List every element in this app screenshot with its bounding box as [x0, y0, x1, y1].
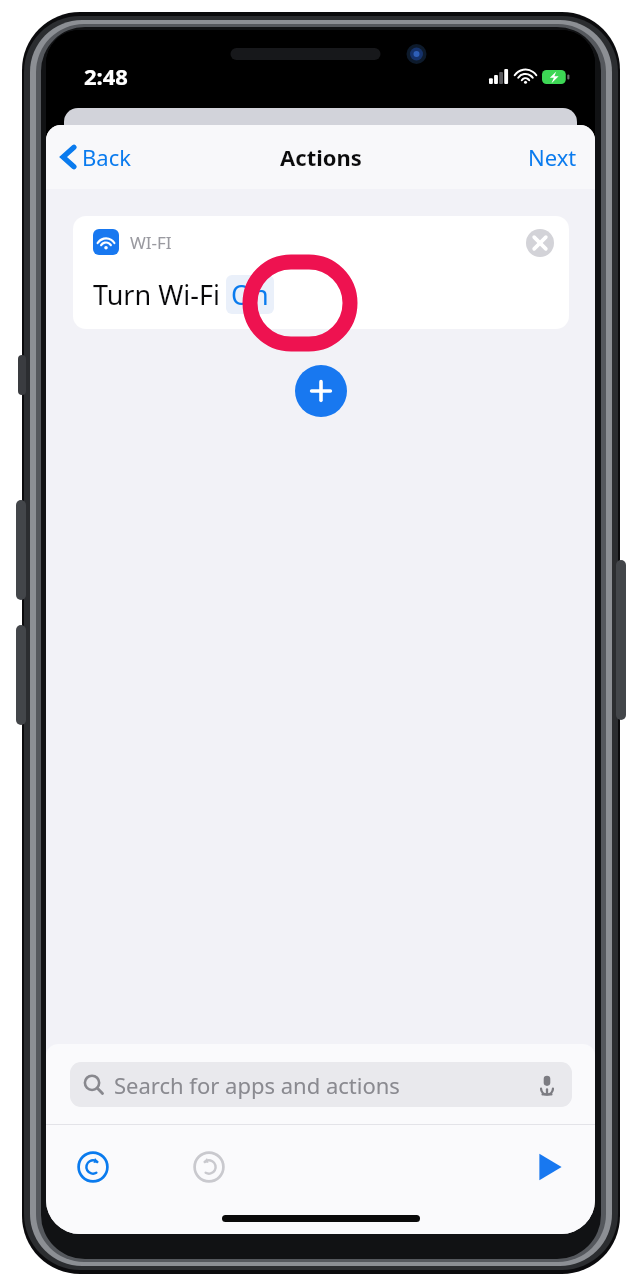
button[interactable]: Back — [46, 136, 141, 178]
button[interactable]: Redo — [187, 1145, 231, 1189]
staticText: Back — [82, 142, 131, 172]
button[interactable]: WI-FI — [73, 216, 569, 329]
staticText: On — [231, 276, 269, 313]
staticText: Search for apps and actions — [114, 1070, 400, 1100]
staticText: Actions — [280, 142, 362, 172]
button[interactable]: On — [226, 275, 274, 314]
button[interactable]: Next — [510, 136, 595, 178]
button[interactable]: Search for apps and actions — [70, 1062, 572, 1107]
staticText: Next — [528, 142, 577, 172]
button[interactable]: Add action — [295, 365, 347, 417]
button[interactable]: Undo — [71, 1145, 115, 1189]
button[interactable]: Play shortcut — [525, 1143, 573, 1191]
staticText: WI-FI — [130, 231, 172, 254]
button[interactable]: Remove action — [525, 228, 555, 258]
button[interactable]: Voice search — [535, 1073, 559, 1097]
staticText: Turn Wi-Fi — [93, 276, 220, 313]
staticText: 2:48 — [84, 61, 128, 91]
